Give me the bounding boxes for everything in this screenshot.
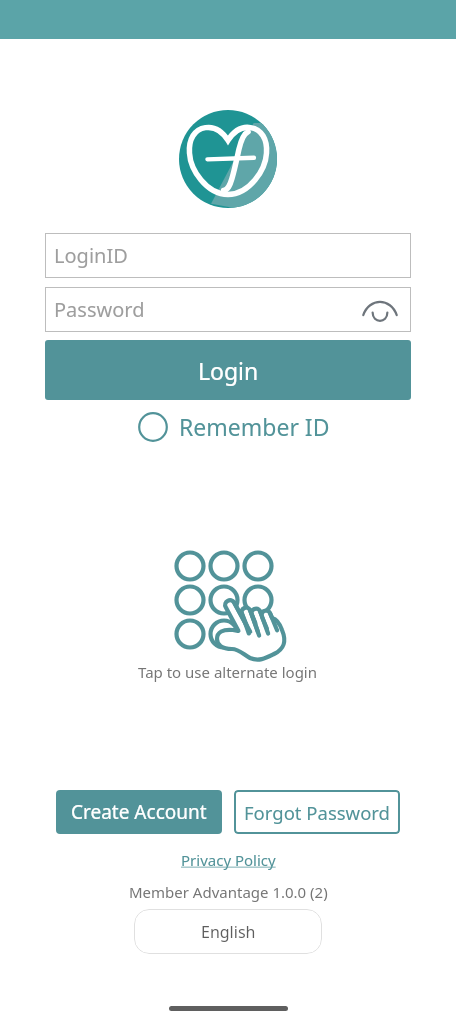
button[interactable]: Privacy Policy xyxy=(181,850,276,870)
staticText: Remember ID xyxy=(179,411,330,442)
staticText: Create Account xyxy=(71,799,207,825)
staticText: Member Advantage 1.0.0 (2) xyxy=(129,882,328,902)
button[interactable]: Tap to use alternate login xyxy=(138,535,318,682)
button[interactable]: Create Account xyxy=(56,790,222,834)
button[interactable]: LoginID xyxy=(45,233,411,278)
staticText: English xyxy=(201,921,256,943)
staticText: Privacy Policy xyxy=(181,850,276,870)
staticText: Password xyxy=(54,296,145,323)
button[interactable]: Login xyxy=(45,340,411,400)
button[interactable]: Password xyxy=(45,287,411,332)
button[interactable]: Forgot Password xyxy=(234,790,400,834)
button[interactable]: Show password xyxy=(359,289,401,331)
staticText: Login xyxy=(198,355,259,386)
staticText: Tap to use alternate login xyxy=(138,662,318,682)
button[interactable]: Remember ID xyxy=(138,411,330,442)
staticText: Forgot Password xyxy=(244,800,390,825)
button[interactable]: English xyxy=(134,909,322,954)
staticText: LoginID xyxy=(54,242,128,269)
